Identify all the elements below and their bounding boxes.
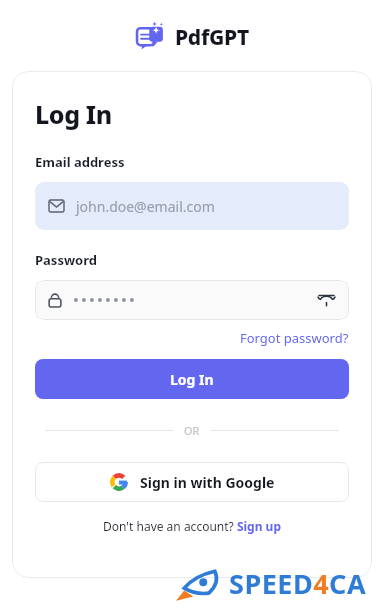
button[interactable]: Forgot password?: [240, 329, 349, 347]
staticText: SPEED4CARD: [229, 565, 382, 607]
staticText: Sign in with Google: [140, 473, 275, 492]
staticText: Password: [35, 251, 97, 269]
button[interactable]: Don't have an account? Sign up: [35, 518, 349, 534]
staticText: Log In: [170, 370, 214, 389]
staticText: PdfGPT: [175, 23, 249, 52]
staticText: OR: [184, 423, 200, 438]
button[interactable]: Show password: [35, 280, 349, 320]
staticText: Forgot password?: [240, 329, 349, 347]
button[interactable]: Show password: [316, 290, 336, 310]
staticText: john.doe@email.com: [76, 197, 215, 216]
staticText: Log In: [35, 97, 112, 131]
button[interactable]: john.doe@email.com: [35, 182, 349, 230]
button[interactable]: Sign in with Google: [35, 462, 349, 502]
staticText: Email address: [35, 153, 125, 171]
button[interactable]: PdfGPT: [0, 20, 384, 54]
button[interactable]: Log In: [35, 359, 349, 399]
staticText: Don't have an account? Sign up: [103, 518, 281, 534]
